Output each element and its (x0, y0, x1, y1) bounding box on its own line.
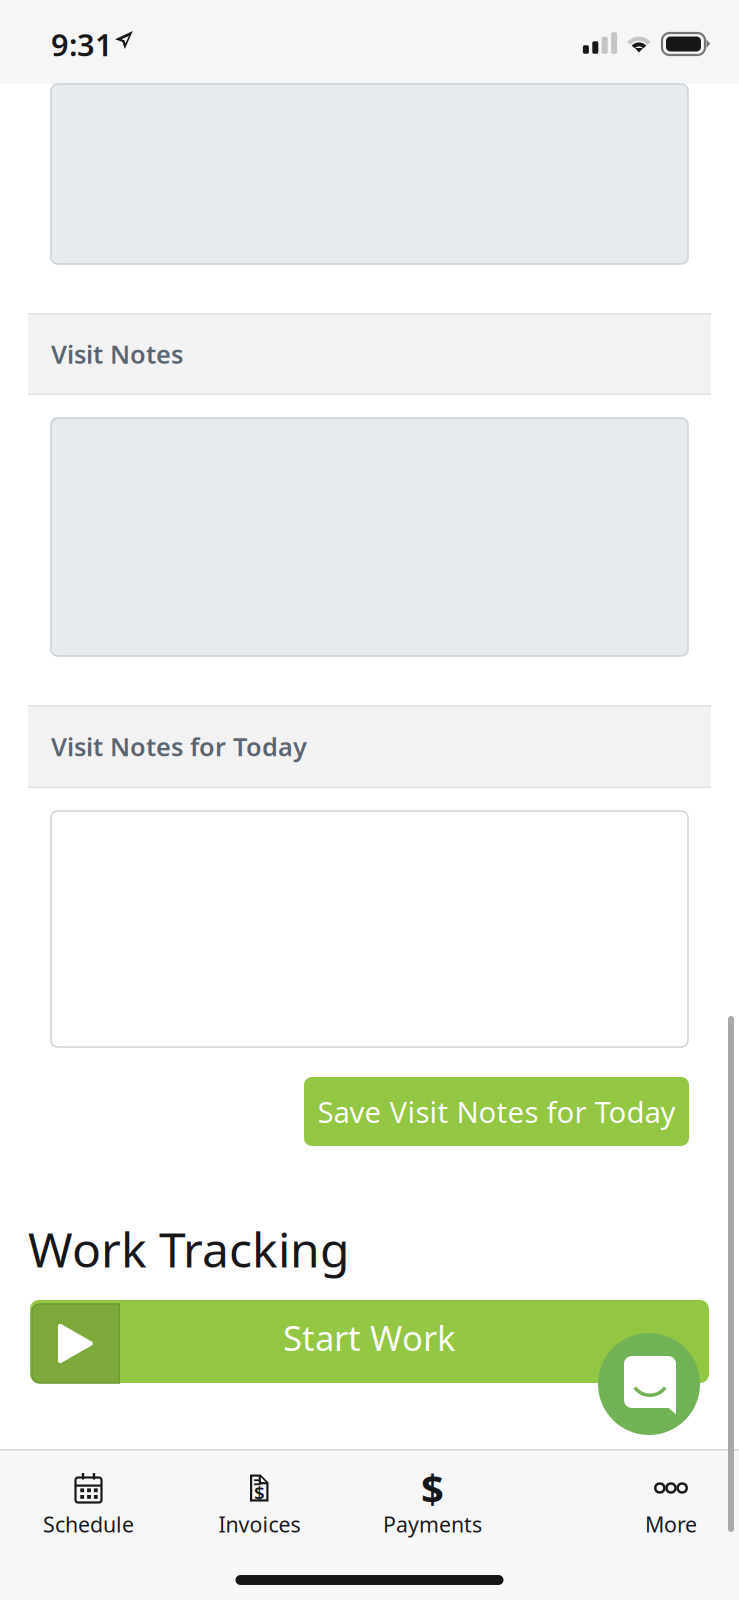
staticText: Save Visit Notes for Today (317, 1092, 675, 1131)
staticText: Payments (383, 1510, 482, 1538)
staticText: Start Work (283, 1314, 456, 1360)
button[interactable]: Start Work (0, 1300, 739, 1383)
staticText: More (645, 1510, 697, 1538)
staticText: Visit Notes for Today (51, 730, 307, 763)
button[interactable]: $ (184, 1449, 334, 1545)
button[interactable]: Save Visit Notes for Today (304, 1077, 689, 1146)
button[interactable]: Open chat (598, 1333, 700, 1435)
staticText: Invoices (218, 1510, 300, 1538)
staticText: Work Tracking (28, 1217, 350, 1281)
staticText: $ (254, 1480, 265, 1505)
staticText: Schedule (43, 1510, 134, 1538)
button[interactable]: $ (357, 1449, 507, 1545)
staticText: Visit Notes (51, 337, 183, 371)
button[interactable]: More (596, 1449, 739, 1545)
staticText: 9:31 (51, 24, 113, 65)
button[interactable]: Schedule (13, 1449, 163, 1545)
staticText: $ (421, 1461, 444, 1514)
